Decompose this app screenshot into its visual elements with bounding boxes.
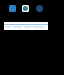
button[interactable]: App one: [9, 5, 16, 12]
button[interactable]: App three: [36, 5, 43, 12]
button[interactable]: App two: [22, 5, 29, 12]
button[interactable]: [4, 22, 48, 30]
